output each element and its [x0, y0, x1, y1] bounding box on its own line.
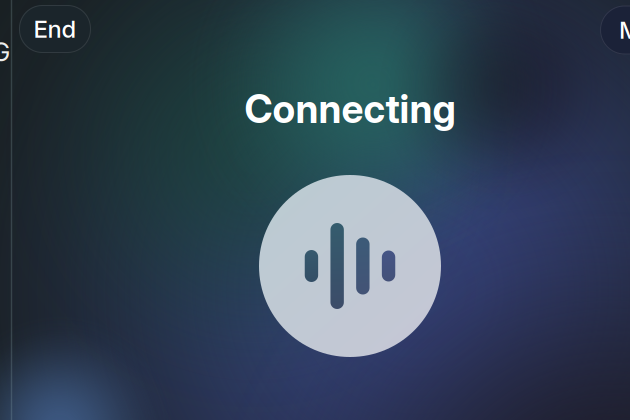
staticText: Mute — [619, 15, 630, 44]
staticText: G — [0, 37, 10, 67]
button[interactable]: Mute — [600, 5, 630, 54]
staticText: Connecting — [244, 86, 455, 132]
button[interactable]: End — [19, 5, 91, 53]
staticText: End — [33, 14, 76, 43]
